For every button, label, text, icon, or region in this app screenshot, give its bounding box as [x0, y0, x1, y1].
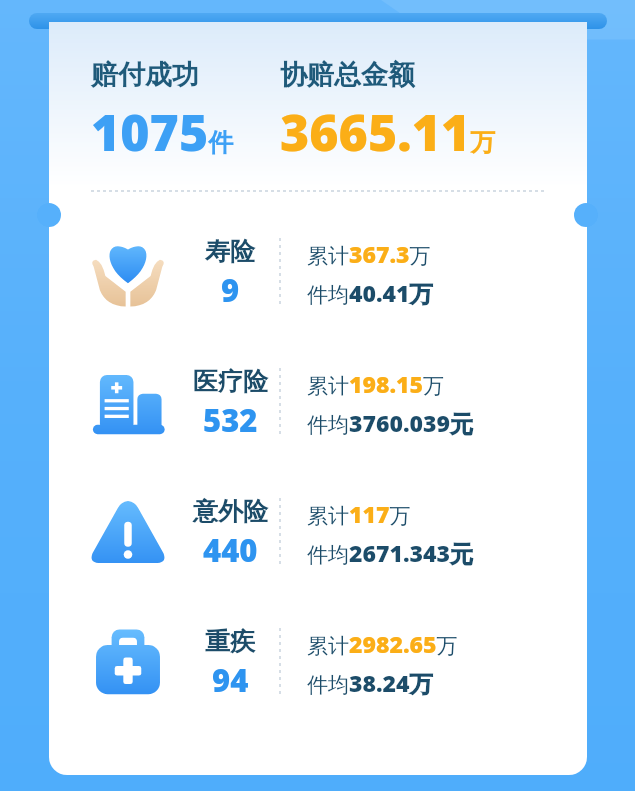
button[interactable]: 意外险 [49, 468, 587, 598]
staticText: 协赔总金额 [280, 58, 415, 92]
button[interactable]: 寿险 [49, 208, 587, 338]
staticText: 3665.11万 [280, 98, 496, 166]
staticText: 1075件 [91, 98, 234, 166]
staticText: 赔付成功 [91, 58, 199, 92]
staticText: 医疗险 [193, 366, 268, 397]
staticText: 累计198.15万 [307, 368, 445, 399]
staticText: 94 [212, 659, 249, 701]
staticText: 寿险 [205, 236, 255, 267]
staticText: 累计117万 [307, 498, 411, 529]
staticText: 件均2671.343元 [307, 537, 473, 568]
staticText: 440 [203, 529, 258, 571]
other: 医疗险 [89, 364, 167, 442]
staticText: 累计367.3万 [307, 238, 431, 269]
staticText: 9 [221, 269, 240, 311]
staticText: 532 [203, 399, 258, 441]
staticText: 件均3760.039元 [307, 407, 473, 438]
other: 寿险 [89, 234, 167, 312]
other: 重疾 [89, 624, 167, 702]
staticText: 重疾 [205, 626, 255, 657]
staticText: 意外险 [193, 496, 268, 527]
button[interactable]: 医疗险 [49, 338, 587, 468]
other: 意外险 [89, 494, 167, 572]
staticText: 累计2982.65万 [307, 628, 458, 659]
staticText: 件均38.24万 [307, 667, 433, 698]
staticText: 件均40.41万 [307, 277, 433, 308]
button[interactable]: 重疾 [49, 598, 587, 728]
